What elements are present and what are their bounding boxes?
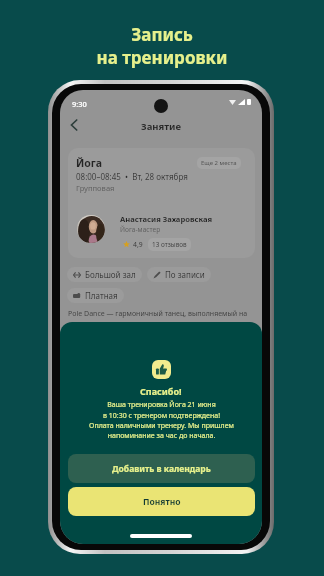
staticText: По записи	[165, 269, 205, 280]
staticText: Анастасия Захаровская	[120, 214, 213, 224]
staticText: 08:00–08:45 • Вт, 28 октября	[76, 171, 188, 182]
staticText: Понятно	[143, 496, 181, 508]
staticText: 9:30	[72, 99, 87, 109]
staticText: Йога-мастер	[120, 225, 161, 234]
staticText: Еще 2 места	[201, 159, 237, 167]
button[interactable]: Платная	[67, 288, 124, 303]
button[interactable]: Back	[65, 116, 83, 134]
staticText: Платная	[85, 290, 118, 301]
staticText: Спасибо!	[140, 385, 182, 397]
staticText: Pole Dance — гармоничный танец, выполняе…	[68, 309, 248, 319]
button[interactable]: По записи	[147, 267, 211, 282]
button[interactable]: Понятно	[68, 487, 255, 516]
staticText: Добавить в календарь	[112, 463, 211, 475]
staticText: Запись	[131, 23, 193, 46]
staticText: 4,9	[133, 240, 143, 249]
staticText: 13 отзывов	[152, 240, 187, 249]
staticText: Групповая	[76, 183, 115, 193]
staticText: Занятие	[141, 120, 182, 133]
staticText: Йога	[76, 156, 103, 170]
button[interactable]: Йога	[68, 148, 255, 258]
button[interactable]: Добавить в календарь	[68, 454, 255, 483]
button[interactable]: Большой зал	[67, 267, 142, 282]
staticText: на тренировки	[96, 46, 228, 69]
staticText: Большой зал	[85, 269, 136, 280]
staticText: Ваша тренировка Йога 21 июня в 10:30 с т…	[89, 400, 234, 440]
